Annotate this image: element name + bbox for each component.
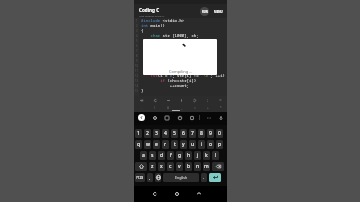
staticText: s: [151, 152, 154, 159]
staticText: =: [194, 106, 196, 110]
button[interactable]: ?123: [135, 173, 145, 182]
button[interactable]: c: [167, 162, 174, 171]
staticText: j: [197, 152, 199, 159]
button[interactable]: 1: [135, 129, 142, 138]
staticText: 13: [135, 79, 138, 83]
button[interactable]: Back: [149, 188, 161, 200]
button[interactable]: Backspace: [212, 162, 224, 171]
button[interactable]: Shift: [135, 162, 147, 171]
staticText: .: [141, 106, 142, 110]
button[interactable]: key \: [148, 104, 162, 112]
button[interactable]: t: [171, 140, 178, 149]
staticText: Coding C: [139, 7, 160, 13]
staticText: 6: [182, 130, 185, 137]
button[interactable]: RUN: [200, 7, 209, 16]
button[interactable]: q: [135, 140, 142, 149]
button[interactable]: a: [140, 151, 147, 160]
button[interactable]: x: [158, 162, 165, 171]
staticText: Compiling ...: [169, 69, 193, 74]
staticText: 7: [191, 130, 194, 137]
button[interactable]: Voice input: [217, 114, 224, 121]
button[interactable]: w: [144, 140, 151, 149]
staticText: 9: [136, 59, 138, 63]
button[interactable]: Colon: [201, 96, 214, 104]
button[interactable]: k: [203, 151, 210, 160]
button[interactable]: 7: [189, 129, 196, 138]
button[interactable]: z: [149, 162, 156, 171]
button[interactable]: s: [149, 151, 156, 160]
button[interactable]: 3: [153, 129, 160, 138]
button[interactable]: 0: [216, 129, 223, 138]
staticText: 1: [137, 130, 140, 137]
button[interactable]: ,: [147, 173, 153, 182]
staticText: +: [207, 106, 209, 110]
button[interactable]: e: [153, 140, 160, 149]
button[interactable]: 5: [171, 129, 178, 138]
button[interactable]: g: [176, 151, 183, 160]
button[interactable]: Settings: [151, 114, 158, 121]
button[interactable]: 4: [162, 129, 169, 138]
button[interactable]: Collapse toolbar: [138, 114, 145, 121]
button[interactable]: Sticker: [176, 114, 183, 121]
staticText: Auto saved at 07:02:17: [139, 14, 165, 17]
button[interactable]: Quote: [214, 96, 227, 104]
staticText: m: [204, 163, 209, 170]
button[interactable]: English: [163, 173, 199, 182]
button[interactable]: Tab: [134, 96, 148, 104]
button[interactable]: Language: [155, 173, 161, 182]
button[interactable]: More options: [205, 114, 212, 121]
button[interactable]: r: [162, 140, 169, 149]
button[interactable]: b: [185, 162, 192, 171]
staticText: printf("Enter a string\n");: [141, 48, 216, 53]
button[interactable]: d: [158, 151, 165, 160]
button[interactable]: m: [203, 162, 210, 171]
button[interactable]: f: [167, 151, 174, 160]
button[interactable]: Home: [171, 188, 183, 200]
staticText: int i, count = 0;: [141, 38, 192, 43]
staticText: 12: [135, 74, 138, 78]
staticText: l: [215, 152, 217, 159]
button[interactable]: h: [185, 151, 192, 160]
staticText: 4: [164, 130, 167, 137]
button[interactable]: 9: [207, 129, 214, 138]
staticText: u: [191, 141, 195, 148]
staticText: 11: [135, 69, 138, 73]
button[interactable]: p: [216, 140, 223, 149]
button[interactable]: key _: [175, 104, 188, 112]
button[interactable]: l: [212, 151, 219, 160]
button[interactable]: u: [189, 140, 196, 149]
button[interactable]: key +: [201, 104, 214, 112]
button[interactable]: n: [194, 162, 201, 171]
button[interactable]: Minus: [162, 96, 175, 104]
button[interactable]: MENU: [213, 9, 224, 15]
button[interactable]: key *: [214, 104, 227, 112]
button[interactable]: .: [201, 173, 207, 182]
button[interactable]: Enter: [209, 173, 221, 182]
staticText: 3: [136, 29, 138, 33]
button[interactable]: GIF: [163, 114, 170, 121]
button[interactable]: Recents: [193, 188, 205, 200]
button[interactable]: Redo: [188, 96, 201, 104]
staticText: d: [160, 152, 164, 159]
staticText: English: [175, 175, 188, 180]
button[interactable]: 2: [144, 129, 151, 138]
button[interactable]: i: [198, 140, 205, 149]
button[interactable]: Clipboard: [188, 114, 195, 121]
staticText: x: [160, 163, 163, 170]
staticText: ++count;: [141, 83, 189, 88]
button[interactable]: y: [180, 140, 187, 149]
staticText: y: [182, 141, 185, 148]
button[interactable]: 6: [180, 129, 187, 138]
button[interactable]: key #: [162, 104, 175, 112]
button[interactable]: Undo: [148, 96, 162, 104]
button[interactable]: o: [207, 140, 214, 149]
staticText: ch = getchar();: [141, 68, 187, 73]
button[interactable]: v: [176, 162, 183, 171]
button[interactable]: j: [194, 151, 201, 160]
button[interactable]: 8: [198, 129, 205, 138]
button[interactable]: Pipe: [175, 96, 188, 104]
staticText: 2: [136, 24, 138, 28]
staticText: *: [220, 106, 222, 110]
